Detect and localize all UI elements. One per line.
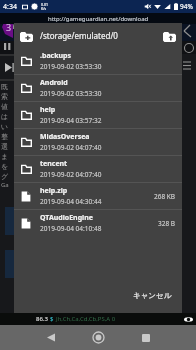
staticText: 268 KB [154, 192, 176, 201]
staticText: MidasOversea [40, 132, 90, 142]
staticText: 2019-09-04 04:30:44 [40, 197, 102, 206]
staticText: tencent [40, 159, 68, 169]
staticText: 整 [1, 132, 8, 141]
staticText: 2019-09-02 04:07:40 [40, 170, 102, 179]
staticText: 索 [1, 92, 8, 101]
button[interactable]: .backups [14, 48, 182, 74]
staticText: help [40, 105, 56, 115]
button[interactable]: tencent [14, 156, 182, 182]
button[interactable]: MidasOversea [14, 129, 182, 155]
staticText: $ [50, 315, 54, 323]
button[interactable]: Back [27, 325, 75, 350]
staticText: QTAudioEngine [40, 213, 93, 223]
staticText: 2019-09-04 03:57:32 [40, 116, 102, 125]
button[interactable]: Home [75, 325, 122, 350]
staticText: 値 [1, 102, 8, 111]
button[interactable]: QTAudioEngine [14, 210, 182, 236]
staticText: ま [1, 152, 9, 161]
staticText: 86.3 [36, 315, 48, 323]
staticText: Ga [1, 181, 9, 189]
staticText: 選 [1, 142, 8, 151]
button[interactable]: help.zip [14, 183, 182, 209]
staticText: 94% [180, 2, 193, 11]
staticText: 0.01 K/s [41, 2, 48, 11]
button[interactable]: キャンセル [123, 286, 182, 305]
button[interactable]: New folder [18, 28, 34, 44]
button[interactable]: Recents [122, 325, 169, 350]
button[interactable]: Parent folder [161, 28, 177, 44]
staticText: help.zip [40, 186, 68, 196]
staticText: 328 B [158, 219, 176, 228]
staticText: を [1, 162, 9, 171]
staticText: 4:34 [3, 2, 17, 12]
button[interactable]: help [14, 102, 182, 128]
staticText: 3 [6, 21, 12, 33]
staticText: /storage/emulated/0 [40, 30, 118, 41]
staticText: 2019-09-02 04:07:40 [40, 143, 102, 152]
staticText: http://gameguardian.net/download [48, 15, 149, 23]
staticText: グ [1, 172, 9, 181]
button[interactable]: Toggle overlay [183, 314, 193, 324]
staticText: Jh,Ch,Ca,Cd,Cb,PS,A 0 [56, 315, 116, 323]
staticText: い [1, 122, 9, 131]
button[interactable]: Android [14, 75, 182, 101]
staticText: 2019-09-04 04:10:48 [40, 224, 102, 233]
staticText: Android [40, 78, 68, 88]
staticText: は [1, 112, 9, 121]
staticText: 2019-09-02 03:53:30 [40, 89, 102, 98]
staticText: .backups [40, 51, 72, 61]
staticText: 既 [1, 82, 8, 91]
staticText: キャンセル [133, 291, 172, 300]
staticText: 2019-09-02 03:53:30 [40, 62, 102, 71]
